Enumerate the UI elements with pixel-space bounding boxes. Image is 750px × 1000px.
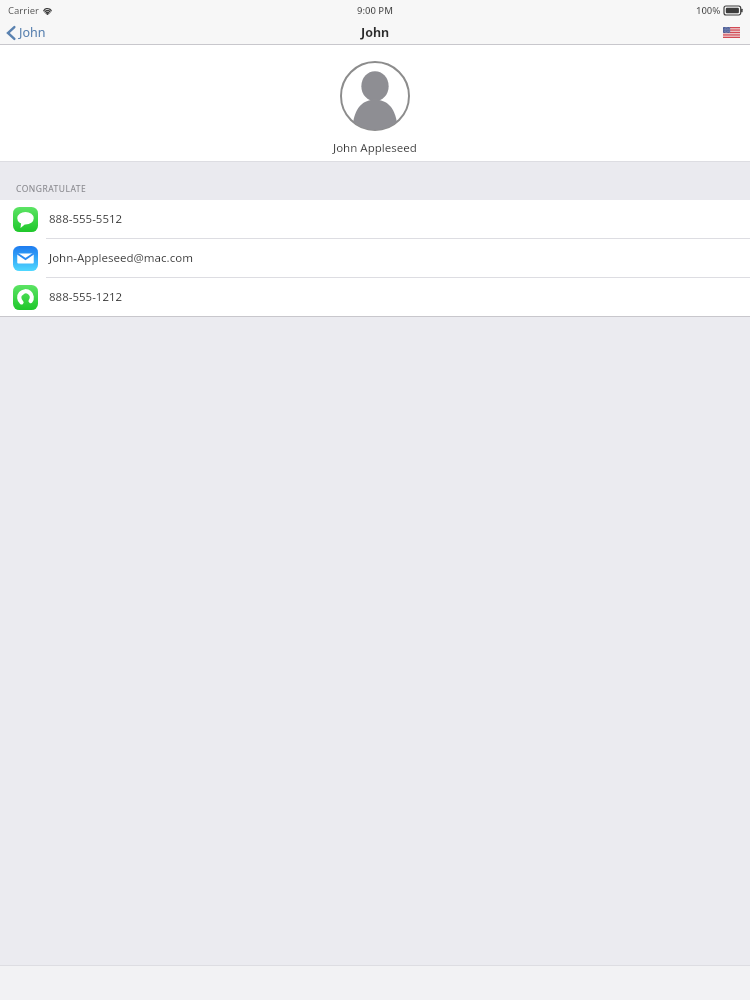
staticText: John xyxy=(361,24,390,41)
button[interactable]: Call 888-555-1212 xyxy=(0,278,750,316)
staticText: 100% xyxy=(696,4,721,17)
staticText: John Appleseed xyxy=(333,140,417,156)
staticText: 9:00 PM xyxy=(357,4,393,17)
button[interactable]: Mail John-Appleseed@mac.com xyxy=(0,239,750,277)
staticText: 888-555-1212 xyxy=(49,289,123,305)
staticText: 888-555-5512 xyxy=(49,211,123,227)
button[interactable]: John xyxy=(0,20,54,45)
staticText: CONGRATULATE xyxy=(16,183,87,195)
staticText: John-Appleseed@mac.com xyxy=(49,250,193,266)
button[interactable]: Message 888-555-5512 xyxy=(0,200,750,238)
staticText: John xyxy=(19,24,46,41)
staticText: Carrier xyxy=(8,4,39,17)
button[interactable]: Language, United States xyxy=(713,20,750,45)
